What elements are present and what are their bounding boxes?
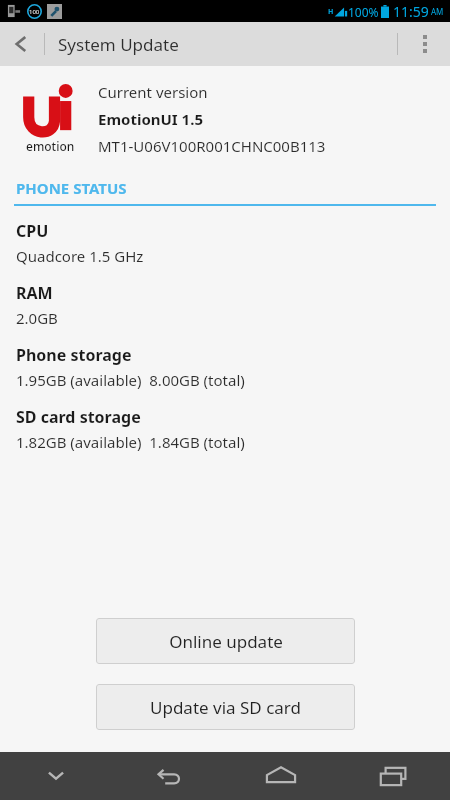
staticText: PHONE STATUS bbox=[16, 178, 127, 198]
staticText: Current version bbox=[98, 82, 208, 102]
staticText: 1.82GB (available) 1.84GB (total) bbox=[16, 432, 245, 452]
button[interactable]: Back bbox=[112, 752, 224, 800]
button[interactable]: More options bbox=[400, 22, 450, 66]
staticText: 100 bbox=[29, 8, 40, 16]
button[interactable]: Home bbox=[224, 752, 337, 800]
staticText: emotion bbox=[26, 138, 75, 154]
staticText: Phone storage bbox=[16, 344, 132, 366]
button[interactable]: Hide navigation bar bbox=[0, 752, 112, 800]
staticText: MT1-U06V100R001CHNC00B113 bbox=[98, 136, 326, 156]
staticText: AM bbox=[431, 6, 444, 17]
button[interactable]: Update via SD card bbox=[96, 684, 355, 730]
button[interactable]: Back bbox=[0, 22, 42, 66]
staticText: 100% bbox=[348, 4, 379, 20]
staticText: SD card storage bbox=[16, 406, 141, 428]
staticText: 2.0GB bbox=[16, 308, 58, 328]
staticText: H bbox=[328, 7, 334, 17]
staticText: System Update bbox=[58, 33, 179, 56]
staticText: Online update bbox=[169, 630, 283, 653]
staticText: RAM bbox=[16, 282, 53, 304]
button[interactable]: Recent apps bbox=[337, 752, 450, 800]
staticText: 11:59 bbox=[393, 2, 429, 21]
staticText: Update via SD card bbox=[150, 696, 301, 719]
staticText: EmotionUI 1.5 bbox=[98, 109, 203, 129]
staticText: Quadcore 1.5 GHz bbox=[16, 246, 144, 266]
staticText: CPU bbox=[16, 220, 49, 242]
button[interactable]: Online update bbox=[96, 618, 355, 664]
staticText: 1.95GB (available) 8.00GB (total) bbox=[16, 370, 245, 390]
